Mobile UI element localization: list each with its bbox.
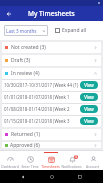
- button[interactable]: Notifications: [61, 151, 82, 170]
- button[interactable]: In review (4): [2, 68, 101, 79]
- staticText: 3: [75, 155, 77, 159]
- staticText: Enter Time: [21, 164, 39, 169]
- button[interactable]: 01/01/2018-01/07/2018|Week 1: [2, 91, 101, 103]
- staticText: Timesheets: [41, 164, 60, 169]
- staticText: In review (4): [11, 70, 40, 77]
- button[interactable]: View: [80, 93, 98, 101]
- button[interactable]: 01/15/2018-01/21/2018|Week 3: [2, 115, 101, 127]
- button[interactable]: View: [80, 105, 98, 113]
- button[interactable]: Returned (1): [2, 129, 101, 140]
- button[interactable]: Home: [46, 171, 58, 183]
- staticText: Approved (6): [10, 142, 40, 148]
- button[interactable]: Approved (6): [2, 142, 101, 148]
- staticText: 10/30/2017-10/31/2017|Week 44 (1): [4, 82, 79, 88]
- button[interactable]: 10/30/2017-10/31/2017|Week 44 (1): [2, 79, 101, 91]
- staticText: View: [84, 94, 94, 100]
- button[interactable]: Account: [82, 151, 103, 170]
- staticText: My Timesheets: [28, 9, 75, 18]
- staticText: Not created (3): [11, 44, 46, 51]
- staticText: View: [84, 118, 94, 124]
- button[interactable]: 01/08/2018-01/14/2018|Week 2: [2, 103, 101, 115]
- button[interactable]: Not created (3): [2, 42, 101, 53]
- staticText: 01/15/2018-01/21/2018|Week 3: [4, 118, 79, 124]
- staticText: Expand all: [62, 27, 87, 34]
- button[interactable]: Timesheets: [40, 151, 61, 170]
- button[interactable]: Draft (3): [2, 55, 101, 66]
- staticText: Dashboard: [1, 164, 19, 169]
- staticText: Notifications: [61, 164, 82, 169]
- button[interactable]: Enter Time: [20, 151, 40, 170]
- staticText: Account: [86, 164, 99, 169]
- staticText: View: [84, 106, 94, 112]
- button[interactable]: Expand all: [55, 25, 87, 36]
- staticText: Draft (3): [11, 57, 31, 64]
- button[interactable]: Recents: [74, 171, 86, 183]
- button[interactable]: Dashboard: [0, 151, 20, 170]
- button[interactable]: Back: [17, 171, 29, 183]
- button[interactable]: View: [80, 81, 98, 89]
- staticText: Returned (1): [11, 131, 41, 138]
- staticText: Last 3 months: [6, 28, 42, 34]
- button[interactable]: Last 3 months: [4, 25, 48, 36]
- staticText: View: [84, 82, 94, 88]
- staticText: 01/01/2018-01/07/2018|Week 1: [4, 94, 79, 100]
- staticText: 01/08/2018-01/14/2018|Week 2: [4, 106, 79, 112]
- button[interactable]: View: [80, 117, 98, 125]
- button[interactable]: Back: [3, 8, 14, 19]
